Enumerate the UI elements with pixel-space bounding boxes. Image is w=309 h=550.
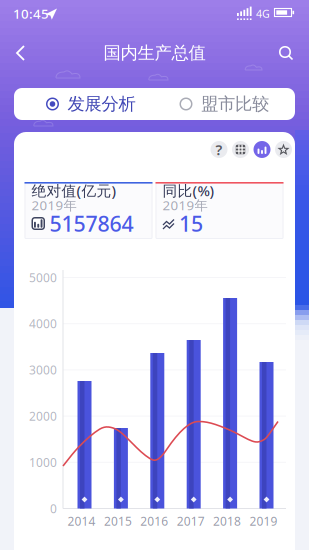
staticText: 5000	[29, 269, 57, 285]
button[interactable]: Back	[15, 45, 31, 61]
staticText: 2017	[177, 513, 205, 529]
button[interactable]: Help	[210, 140, 227, 159]
staticText: 0	[50, 500, 57, 516]
staticText: 绝对值(亿元)	[31, 181, 116, 200]
staticText: 1000	[29, 454, 57, 470]
button[interactable]: Search	[278, 45, 294, 61]
staticText: 4000	[29, 316, 57, 332]
staticText: 2000	[29, 408, 57, 424]
button[interactable]: 绝对值(亿元)	[24, 182, 152, 239]
button[interactable]: 盟市比较	[154, 88, 295, 120]
button[interactable]: 发展分析	[14, 88, 154, 120]
staticText: 2019年	[31, 196, 76, 214]
staticText: 2018	[213, 513, 241, 529]
staticText: 2015	[104, 513, 132, 529]
button[interactable]: Table view	[232, 141, 249, 158]
staticText: 同比(%)	[162, 181, 214, 200]
staticText: ?	[215, 140, 222, 159]
staticText: 发展分析	[67, 93, 135, 115]
staticText: 3000	[29, 362, 57, 378]
staticText: 10:45	[13, 5, 49, 22]
staticText: 4G	[256, 6, 270, 21]
button[interactable]: Favorite	[275, 141, 292, 158]
staticText: 2019	[249, 513, 277, 529]
button[interactable]: 同比(%)	[155, 182, 283, 239]
staticText: 5157864	[49, 209, 133, 238]
staticText: 2019年	[162, 196, 207, 214]
staticText: 国内生产总值	[103, 42, 205, 64]
button[interactable]: Chart view	[253, 141, 270, 158]
staticText: 2016	[140, 513, 168, 529]
staticText: 2014	[67, 513, 95, 529]
staticText: 15	[179, 209, 203, 238]
staticText: 盟市比较	[201, 93, 269, 115]
